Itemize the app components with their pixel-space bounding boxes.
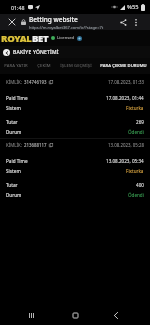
staticText: 213688117	[24, 142, 47, 148]
staticText: %55	[127, 3, 139, 11]
staticText: Paid Time	[6, 158, 28, 164]
staticText: PARA ÇEKME DURUMU	[100, 63, 147, 69]
staticText: 13.08.2023, 05:34	[106, 158, 144, 164]
button[interactable]: Back	[3, 49, 10, 56]
button[interactable]: Recent apps	[20, 307, 42, 323]
staticText: KİMLİK:	[6, 142, 24, 148]
staticText: Tutar	[6, 119, 18, 125]
button[interactable]: PARA YATIR	[0, 58, 32, 74]
button[interactable]: Share	[116, 14, 130, 30]
button[interactable]: İŞLEM GEÇMİŞİ	[55, 58, 96, 74]
staticText: Paid Time	[6, 95, 28, 101]
staticText: Betting website	[29, 15, 78, 24]
staticText: 400	[136, 182, 144, 188]
staticText: 17.08.2023, 01:44	[106, 95, 144, 101]
staticText: Tutar	[6, 182, 18, 188]
staticText: 314746193	[24, 79, 47, 85]
staticText: https://m.royalbet367.com/tr/?stage=7t	[29, 25, 104, 30]
staticText: 13.08.2023, 05:28	[108, 142, 144, 148]
staticText: Ödendi	[128, 129, 144, 135]
staticText: 01:48	[11, 4, 25, 11]
staticText: Licensed	[57, 35, 75, 41]
staticText: ÇEKİM	[37, 63, 51, 69]
staticText: Sistem	[6, 105, 21, 111]
staticText: BAKİYE YÖNETİMİ	[13, 49, 59, 56]
staticText: Durum	[6, 192, 22, 198]
staticText: Fixturka	[126, 168, 144, 174]
staticText: BET	[32, 32, 49, 45]
button[interactable]: Back	[105, 307, 127, 323]
staticText: Durum	[6, 129, 22, 135]
staticText: Ödendi	[128, 192, 144, 198]
staticText: Sistem	[6, 168, 21, 174]
button[interactable]: More options	[130, 14, 141, 30]
staticText: 17.08.2023, 01:33	[108, 79, 144, 85]
button[interactable]: PARA ÇEKME DURUMU	[96, 58, 150, 74]
staticText: KİMLİK:	[6, 79, 24, 85]
button[interactable]: Close	[5, 14, 19, 30]
staticText: 269	[136, 119, 144, 125]
staticText: ROYAL	[1, 32, 32, 45]
staticText: İŞLEM GEÇMİŞİ	[60, 63, 92, 69]
button[interactable]: ÇEKİM	[32, 58, 55, 74]
staticText: Fixturka	[126, 105, 144, 111]
button[interactable]: Home	[64, 307, 86, 323]
staticText: PARA YATIR	[4, 63, 28, 69]
